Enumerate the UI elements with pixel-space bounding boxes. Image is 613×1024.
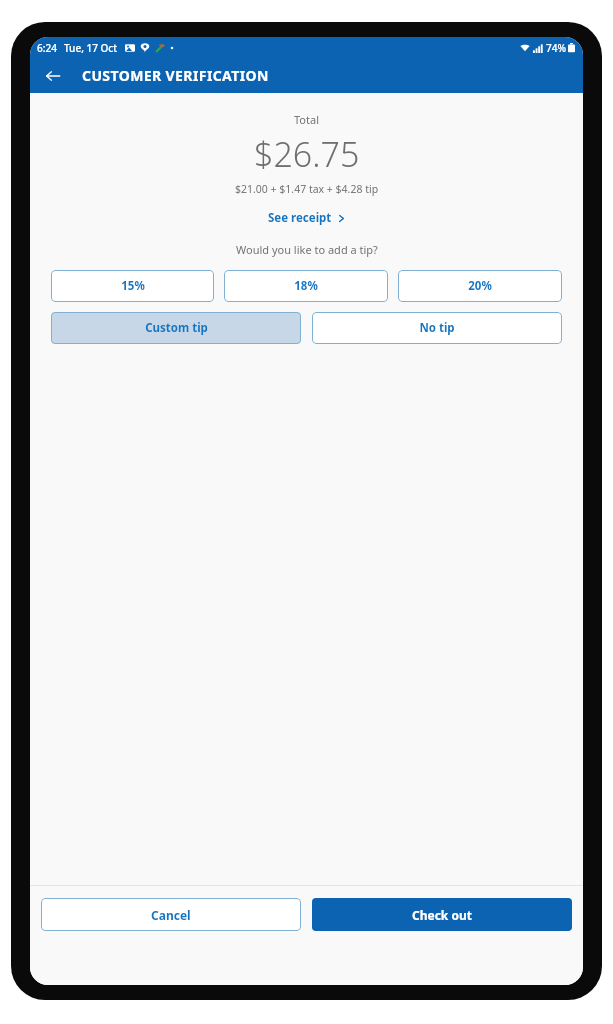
staticText: Cancel	[151, 907, 191, 923]
button[interactable]: No tip	[312, 312, 562, 344]
staticText: 6:24	[37, 41, 57, 55]
staticText: Check out	[412, 907, 472, 923]
staticText: Would you like to add a tip?	[236, 242, 378, 257]
staticText: See receipt	[268, 210, 332, 226]
button[interactable]: Cancel	[41, 898, 301, 931]
button[interactable]: Custom tip	[51, 312, 301, 344]
button[interactable]: 15%	[51, 270, 214, 302]
staticText: $21.00 + $1.47 tax + $4.28 tip	[235, 182, 379, 196]
button[interactable]: Check out	[312, 898, 572, 931]
staticText: 20%	[468, 278, 492, 294]
staticText: $26.75	[254, 131, 360, 177]
staticText: Custom tip	[145, 320, 208, 336]
button[interactable]: See receipt	[262, 208, 352, 228]
button[interactable]: 18%	[224, 270, 388, 302]
button[interactable]: Back	[36, 59, 70, 93]
staticText: 18%	[294, 278, 318, 294]
staticText: 74%	[546, 41, 566, 55]
button[interactable]: 20%	[398, 270, 562, 302]
staticText: 15%	[121, 278, 145, 294]
staticText: CUSTOMER VERIFICATION	[82, 66, 269, 85]
staticText: No tip	[419, 320, 455, 336]
staticText: Total	[294, 112, 319, 127]
staticText: Tue, 17 Oct	[64, 41, 118, 55]
